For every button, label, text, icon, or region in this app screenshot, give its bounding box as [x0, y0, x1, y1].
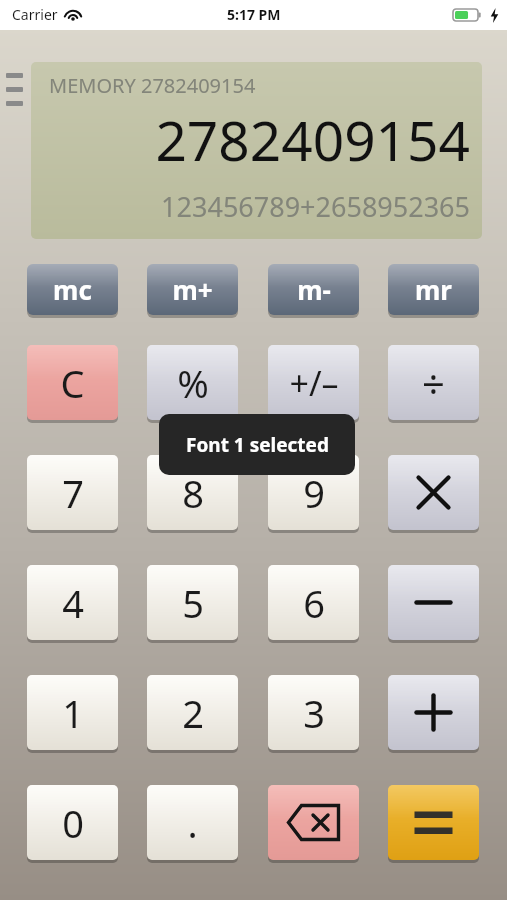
button[interactable]: C	[27, 345, 118, 420]
staticText: 2782409154	[155, 102, 470, 177]
button[interactable]: 7	[27, 455, 118, 530]
staticText: mr	[415, 272, 452, 307]
staticText: 9	[303, 467, 325, 519]
staticText: 5:17 PM	[227, 5, 281, 24]
button[interactable]: 6	[268, 565, 359, 640]
staticText: MEMORY 2782409154	[49, 72, 256, 99]
button[interactable]: ÷	[388, 345, 479, 420]
staticText: Font 1 selected	[186, 432, 329, 458]
staticText: 4	[62, 577, 84, 629]
button[interactable]: Plus	[388, 675, 479, 750]
staticText: %	[177, 357, 209, 409]
button[interactable]: mc	[27, 264, 118, 315]
button[interactable]: mr	[388, 264, 479, 315]
staticText: +/–	[289, 360, 339, 406]
button[interactable]: 4	[27, 565, 118, 640]
staticText: m+	[172, 272, 213, 307]
button[interactable]: %	[147, 345, 238, 420]
staticText: 3	[303, 687, 325, 739]
staticText: 123456789+2658952365	[161, 188, 470, 225]
button[interactable]: .	[147, 785, 238, 860]
staticText: C	[60, 357, 85, 409]
button[interactable]: 3	[268, 675, 359, 750]
staticText: Carrier	[12, 5, 58, 24]
staticText: m-	[297, 272, 331, 307]
staticText: .	[187, 797, 198, 849]
button[interactable]: Minus	[388, 565, 479, 640]
staticText: 2	[182, 687, 204, 739]
staticText: 6	[303, 577, 325, 629]
button[interactable]: Backspace	[268, 785, 359, 860]
staticText: 0	[62, 797, 84, 849]
button[interactable]: Font 1 selected	[159, 414, 355, 475]
staticText: 8	[182, 467, 204, 519]
button[interactable]: 9	[268, 455, 359, 530]
staticText: 1	[62, 687, 84, 739]
button[interactable]: 1	[27, 675, 118, 750]
button[interactable]: m-	[268, 264, 359, 315]
staticText: 7	[62, 467, 84, 519]
staticText: ÷	[422, 356, 445, 410]
staticText: 5	[182, 577, 204, 629]
button[interactable]: m+	[147, 264, 238, 315]
button[interactable]: MEMORY 2782409154	[31, 62, 482, 239]
button[interactable]: 2	[147, 675, 238, 750]
staticText: mc	[53, 272, 92, 307]
button[interactable]: 8	[147, 455, 238, 530]
button[interactable]: Menu	[2, 66, 28, 118]
button[interactable]: 5	[147, 565, 238, 640]
button[interactable]: 0	[27, 785, 118, 860]
button[interactable]: Equals	[388, 785, 479, 860]
button[interactable]: Multiply	[388, 455, 479, 530]
button[interactable]: +/–	[268, 345, 359, 420]
